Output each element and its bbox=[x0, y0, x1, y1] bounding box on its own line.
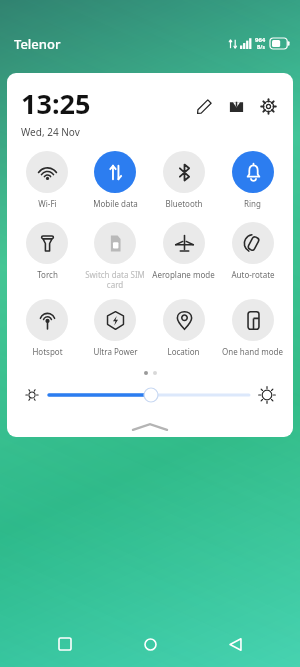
button[interactable]: Wi-Fi bbox=[13, 151, 81, 209]
staticText: 964 bbox=[255, 36, 266, 44]
staticText: Location bbox=[167, 346, 200, 357]
staticText: Switch data SIM card bbox=[85, 269, 145, 290]
button[interactable]: One hand mode bbox=[218, 299, 287, 357]
button[interactable]: Bluetooth bbox=[149, 151, 218, 209]
button[interactable]: Torch bbox=[13, 222, 81, 280]
button[interactable]: Back bbox=[215, 624, 255, 664]
button[interactable]: Ring bbox=[218, 151, 287, 209]
button[interactable]: Location bbox=[149, 299, 218, 357]
staticText: Ring bbox=[244, 198, 261, 209]
staticText: Hotspot bbox=[32, 346, 63, 357]
button[interactable]: Switch data SIM card bbox=[81, 222, 149, 290]
staticText: B/s bbox=[257, 44, 265, 51]
staticText: Wed, 24 Nov bbox=[21, 125, 80, 139]
staticText: Bluetooth bbox=[165, 198, 203, 209]
staticText: One hand mode bbox=[222, 346, 283, 357]
button[interactable]: Mobile data bbox=[81, 151, 149, 209]
staticText: Aeroplane mode bbox=[152, 269, 215, 280]
staticText: Wi-Fi bbox=[38, 198, 57, 209]
staticText: 13:25 bbox=[21, 85, 91, 122]
staticText: Telenor bbox=[14, 35, 61, 53]
button[interactable]: Aeroplane mode bbox=[149, 222, 218, 280]
button[interactable]: Home bbox=[130, 624, 170, 664]
button[interactable]: Inbox bbox=[223, 93, 249, 119]
button[interactable] bbox=[49, 385, 249, 405]
staticText: Torch bbox=[37, 269, 58, 280]
staticText: Mobile data bbox=[93, 198, 138, 209]
staticText: Ultra Power bbox=[93, 346, 138, 357]
button[interactable]: Edit bbox=[191, 93, 217, 119]
button[interactable]: Ultra Power bbox=[81, 299, 149, 357]
button[interactable]: Recents bbox=[45, 624, 85, 664]
button[interactable]: Auto-rotate bbox=[218, 222, 287, 280]
button[interactable]: Hotspot bbox=[13, 299, 81, 357]
button[interactable]: Settings bbox=[255, 93, 281, 119]
staticText: Auto-rotate bbox=[231, 269, 275, 280]
